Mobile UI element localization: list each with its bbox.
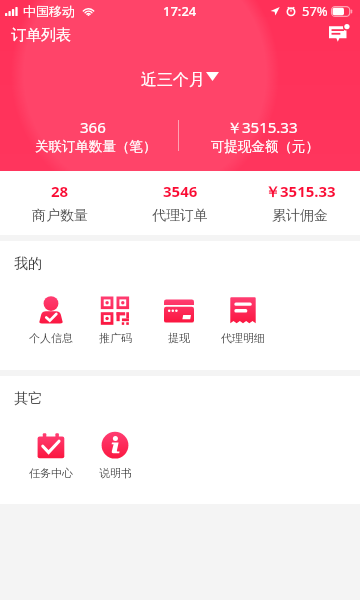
- staticText: 个人信息: [29, 331, 73, 345]
- button[interactable]: 代理明细: [211, 296, 275, 345]
- staticText: 任务中心: [29, 466, 73, 480]
- button[interactable]: 提现: [147, 296, 211, 345]
- staticText: 订单列表: [11, 26, 71, 45]
- staticText: ￥3515.33: [227, 117, 298, 137]
- staticText: 累计佣金: [272, 207, 328, 225]
- button[interactable]: ￥3515.33: [182, 117, 342, 155]
- button[interactable]: 任务中心: [19, 431, 83, 480]
- staticText: 366: [80, 117, 106, 137]
- staticText: 3546: [163, 181, 198, 201]
- staticText: 可提现金额（元）: [211, 138, 319, 155]
- staticText: 商户数量: [32, 207, 88, 225]
- staticText: 我的: [14, 255, 42, 273]
- button[interactable]: 推广码: [83, 296, 147, 345]
- button[interactable]: 366: [13, 117, 173, 155]
- staticText: 28: [51, 181, 69, 201]
- staticText: 其它: [14, 390, 42, 408]
- staticText: 提现: [168, 331, 190, 345]
- staticText: 17:24: [163, 2, 197, 20]
- button[interactable]: ￥3515.33: [240, 181, 360, 225]
- staticText: 57%: [302, 2, 328, 20]
- staticText: 推广码: [99, 331, 132, 345]
- staticText: 代理明细: [221, 331, 265, 345]
- button[interactable]: Messages: [329, 25, 351, 46]
- staticText: 代理订单: [152, 207, 208, 225]
- button[interactable]: 说明书: [83, 431, 147, 480]
- button[interactable]: 近三个月: [135, 66, 225, 94]
- button[interactable]: 28: [0, 181, 120, 225]
- button[interactable]: 个人信息: [19, 296, 83, 345]
- staticText: 关联订单数量（笔）: [35, 138, 157, 155]
- staticText: 中国移动: [23, 3, 75, 19]
- staticText: 近三个月: [141, 70, 205, 90]
- staticText: ￥3515.33: [265, 181, 336, 201]
- staticText: 说明书: [99, 466, 132, 480]
- button[interactable]: 3546: [120, 181, 240, 225]
